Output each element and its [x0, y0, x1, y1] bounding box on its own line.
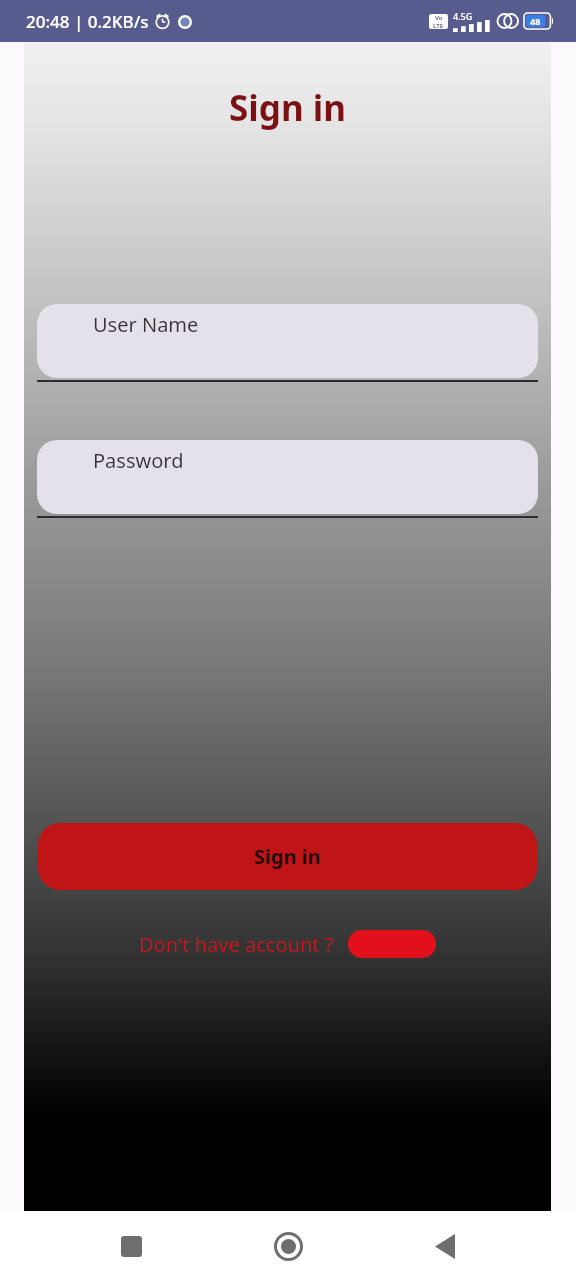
staticText: 48: [530, 15, 541, 27]
staticText: Sign in: [229, 84, 346, 132]
button[interactable]: Sign in: [38, 823, 537, 890]
button[interactable]: Back: [419, 1220, 471, 1272]
staticText: Sign in: [254, 843, 321, 870]
staticText: 20:48 | 0.2KB/s: [26, 10, 149, 33]
staticText: LTE: [433, 22, 444, 29]
button[interactable]: Sign up: [348, 930, 436, 958]
button[interactable]: Home: [262, 1220, 314, 1272]
staticText: 4.5G: [453, 10, 473, 22]
button[interactable]: User Name: [37, 304, 538, 382]
staticText: User Name: [93, 311, 199, 338]
staticText: Vo: [435, 14, 443, 22]
button[interactable]: Recent apps: [105, 1220, 157, 1272]
staticText: Don't have account ?: [139, 931, 334, 958]
staticText: Password: [93, 447, 184, 474]
button[interactable]: Password: [37, 440, 538, 518]
